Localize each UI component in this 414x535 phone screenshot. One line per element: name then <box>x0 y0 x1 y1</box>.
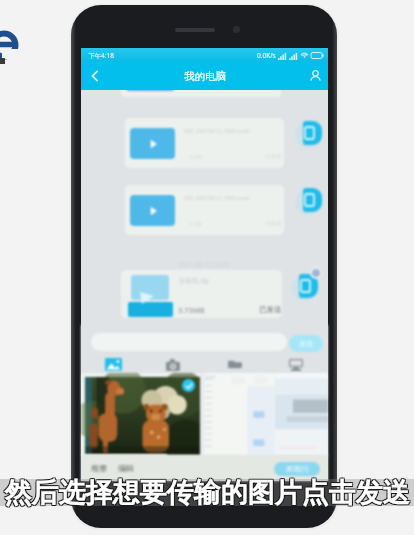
staticText: 编辑 <box>118 463 134 473</box>
button[interactable]: Device avatar <box>303 188 322 212</box>
staticText: 相册 <box>91 463 107 473</box>
staticText: 然后选择想要传输的图片点击发送 <box>1 477 414 511</box>
button[interactable]: Files <box>217 356 253 373</box>
button[interactable]: 发送 <box>289 335 323 352</box>
staticText: 发送(1) <box>286 464 309 474</box>
button[interactable]: Contact info <box>302 62 328 90</box>
staticText: VID_20210612_1602.mp4 <box>184 194 249 201</box>
button[interactable] <box>275 373 328 456</box>
staticText: 0.0K/s <box>257 51 276 60</box>
staticText: 然后选择想要传输的图片点击发送 <box>0 476 413 510</box>
staticText: 下午4:18 <box>88 51 114 60</box>
staticText: 然后选择想要传输的图片点击发送 <box>1 475 414 509</box>
staticText: 然后选择想要传输的图片点击发送 <box>1 476 414 510</box>
staticText: 安装包.zip <box>179 276 209 285</box>
button[interactable]: VID_20210612_1602.mp4 <box>125 118 284 168</box>
button[interactable]: Device avatar <box>299 274 318 298</box>
button[interactable]: VID_20210612_1602.mp4 <box>125 185 284 235</box>
staticText: VID_20210612_1602.mp4 <box>184 127 249 134</box>
staticText: 然后选择想要传输的图片点击发送 <box>0 477 414 511</box>
staticText: 我的电脑 <box>184 70 226 83</box>
staticText: 发送 <box>299 339 313 348</box>
button[interactable]: Device avatar <box>303 121 322 145</box>
button[interactable]: 编辑 <box>118 463 134 473</box>
button[interactable] <box>200 373 274 456</box>
staticText: 已发送 <box>259 305 282 314</box>
staticText: 然后选择想要传输的图片点击发送 <box>0 475 413 509</box>
staticText: 然后选择想要传输的图片点击发送 <box>0 475 414 509</box>
staticText: 然后选择想要传输的图片点击发送 <box>0 476 414 510</box>
button[interactable]: 相册 <box>91 463 107 473</box>
button[interactable]: Computer <box>278 356 314 373</box>
button[interactable]: Back <box>83 62 107 90</box>
button[interactable]: 发送(1) <box>274 462 320 476</box>
button[interactable] <box>85 377 200 454</box>
button[interactable]: Camera <box>155 356 191 373</box>
button[interactable] <box>121 270 282 318</box>
button[interactable]: Gallery <box>95 356 131 373</box>
staticText: 然后选择想要传输的图片点击发送 <box>0 477 413 511</box>
staticText: 3.73MB <box>178 305 205 315</box>
